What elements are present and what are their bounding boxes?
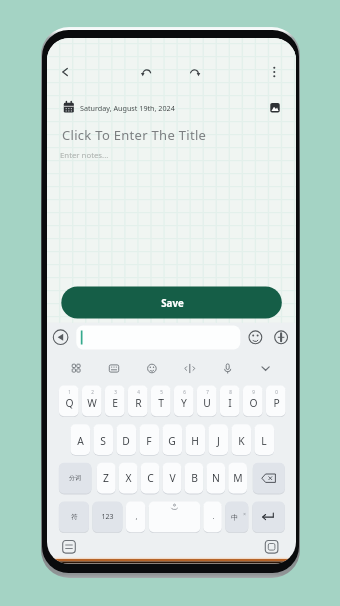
staticText: 0: [275, 389, 278, 395]
staticText: P: [273, 396, 280, 410]
staticText: B: [191, 471, 198, 485]
staticText: 5: [160, 389, 163, 395]
staticText: 123: [101, 512, 114, 522]
staticText: J: [217, 434, 220, 448]
staticText: C: [147, 471, 154, 485]
staticText: 6: [183, 389, 186, 395]
staticText: W: [87, 396, 97, 410]
staticText: Y: [181, 396, 187, 410]
staticText: Saturday, August 19th, 2024: [80, 103, 175, 113]
staticText: 1: [68, 389, 71, 395]
staticText: 9: [252, 389, 255, 395]
staticText: 分词: [69, 474, 81, 482]
staticText: A: [77, 434, 84, 448]
staticText: V: [169, 471, 176, 485]
staticText: Enter notes...: [60, 150, 109, 161]
staticText: K: [238, 434, 245, 448]
staticText: ,: [135, 511, 138, 521]
staticText: S: [100, 434, 106, 448]
staticText: 7: [206, 389, 209, 395]
staticText: Click To Enter The Title: [62, 126, 207, 144]
staticText: ×: [243, 511, 246, 517]
staticText: Q: [65, 396, 74, 410]
staticText: H: [191, 434, 199, 448]
staticText: I: [228, 396, 232, 410]
staticText: Z: [103, 471, 109, 485]
staticText: G: [168, 434, 176, 448]
staticText: L: [261, 434, 267, 448]
staticText: 4: [137, 389, 140, 395]
staticText: M: [233, 471, 243, 485]
staticText: U: [203, 396, 211, 410]
staticText: 中: [231, 513, 238, 522]
staticText: 2: [91, 389, 94, 395]
staticText: T: [158, 396, 164, 410]
staticText: 符: [71, 513, 78, 521]
staticText: D: [122, 434, 130, 448]
staticText: O: [249, 396, 258, 410]
staticText: 8: [229, 389, 232, 395]
staticText: 3: [114, 389, 117, 395]
staticText: .: [212, 511, 215, 521]
staticText: Save: [161, 297, 184, 310]
staticText: E: [112, 396, 118, 410]
staticText: X: [125, 471, 132, 485]
staticText: R: [135, 396, 142, 410]
staticText: N: [212, 471, 220, 485]
staticText: F: [146, 434, 152, 448]
